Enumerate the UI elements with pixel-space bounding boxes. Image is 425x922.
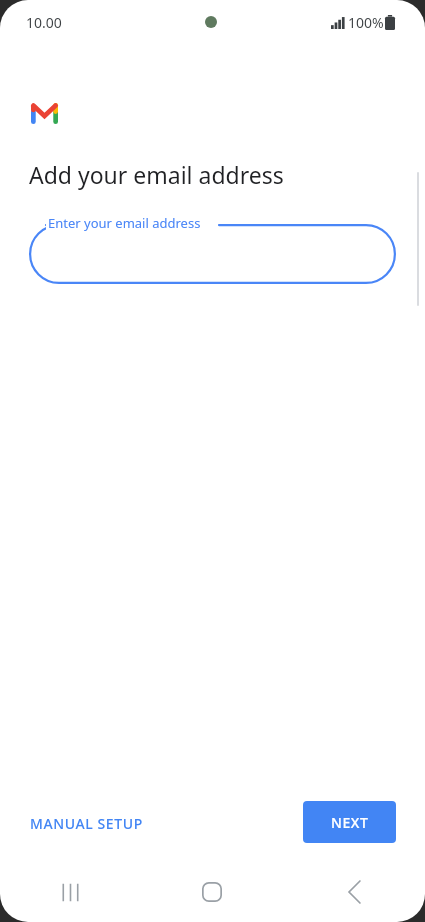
staticText: Add your email address xyxy=(29,159,284,190)
button[interactable]: NEXT xyxy=(303,801,396,843)
button[interactable]: MANUAL SETUP xyxy=(18,805,155,842)
button[interactable]: Back xyxy=(283,862,425,922)
staticText: Enter your email address xyxy=(48,214,201,232)
button[interactable]: Recent apps xyxy=(0,862,141,922)
staticText: NEXT xyxy=(331,813,369,832)
staticText: 10.00 xyxy=(26,13,62,32)
staticText: 100% xyxy=(348,13,384,32)
staticText: MANUAL SETUP xyxy=(30,814,143,833)
button[interactable] xyxy=(29,224,396,284)
button[interactable]: Home xyxy=(141,862,283,922)
